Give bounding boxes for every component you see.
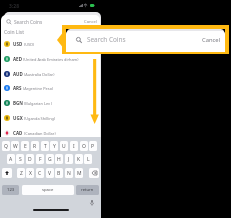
staticText: W <box>13 143 18 150</box>
staticText: USD <box>13 41 23 47</box>
button[interactable]: G <box>46 154 54 164</box>
button[interactable]: T <box>41 141 49 151</box>
staticText: O <box>82 143 86 150</box>
staticText: F <box>39 156 42 163</box>
staticText: G <box>48 156 52 163</box>
staticText: C <box>38 170 42 177</box>
staticText: H <box>57 156 61 163</box>
button[interactable]: F <box>36 154 44 164</box>
staticText: Y <box>53 143 56 150</box>
staticText: space <box>42 187 54 193</box>
button[interactable]: S <box>16 154 24 164</box>
button[interactable]: I <box>70 141 78 151</box>
staticText: (United Arab Emirates dirham) <box>23 57 79 62</box>
staticText: CAD <box>13 130 23 136</box>
staticText: R <box>33 143 37 150</box>
staticText: M <box>77 170 82 177</box>
button[interactable]: D <box>26 154 34 164</box>
staticText: T <box>44 143 47 150</box>
button[interactable]: A <box>7 154 15 164</box>
button[interactable]: E <box>21 141 29 151</box>
button[interactable]: B <box>55 168 63 178</box>
staticText: Z <box>20 170 23 177</box>
staticText: BGN <box>13 100 23 106</box>
button[interactable]: ARS <box>4 83 101 93</box>
staticText: Search Coins <box>14 19 43 25</box>
staticText: P <box>91 143 95 150</box>
button[interactable]: V <box>46 168 54 178</box>
button[interactable]: J <box>65 154 73 164</box>
staticText: N <box>67 170 71 177</box>
button[interactable]: CAD <box>4 128 101 138</box>
button[interactable]: U <box>60 141 68 151</box>
button[interactable]: N <box>65 168 73 178</box>
staticText: Q <box>4 143 8 150</box>
staticText: Cancel <box>84 19 98 25</box>
button[interactable]: AUD <box>4 69 101 79</box>
button[interactable]: K <box>75 154 83 164</box>
staticText: 3:28 <box>9 3 19 10</box>
staticText: A <box>9 156 13 163</box>
staticText: X <box>29 170 32 177</box>
button[interactable]: L <box>84 154 92 164</box>
staticText: U <box>62 143 66 150</box>
staticText: (Argentine Peso) <box>23 86 54 91</box>
staticText: V <box>48 170 52 177</box>
staticText: L <box>87 156 90 163</box>
staticText: J <box>68 156 70 163</box>
button[interactable]: space <box>22 185 74 195</box>
staticText: S <box>19 156 22 163</box>
button[interactable]: R <box>31 141 39 151</box>
button[interactable]: USD <box>4 39 101 49</box>
button[interactable]: X <box>26 168 34 178</box>
staticText: AED <box>13 56 22 62</box>
staticText: K <box>77 156 81 163</box>
staticText: ARS <box>13 85 22 91</box>
staticText: UGX <box>13 115 23 121</box>
staticText: (Canadian Dollar) <box>24 131 56 136</box>
staticText: 123 <box>7 187 15 193</box>
staticText: I <box>73 143 75 150</box>
staticText: return <box>81 187 94 193</box>
button[interactable]: O <box>80 141 88 151</box>
button[interactable]: BGN <box>4 98 101 108</box>
button[interactable]: M <box>75 168 83 178</box>
button[interactable]: AED <box>4 54 101 64</box>
button[interactable]: C <box>36 168 44 178</box>
button[interactable]: P <box>89 141 97 151</box>
staticText: Coin List <box>4 29 24 36</box>
staticText: (Uganda Shilling) <box>24 116 56 121</box>
staticText: (Bulgarian Lev ) <box>24 101 53 106</box>
button[interactable]: H <box>55 154 63 164</box>
staticText: (USD) <box>24 42 35 47</box>
staticText: B <box>57 170 61 177</box>
staticText: Cancel <box>202 36 221 44</box>
staticText: (Australia Dollar) <box>24 72 55 77</box>
button[interactable]: 123 <box>2 185 19 195</box>
button[interactable]: Search Coins <box>6 17 98 26</box>
staticText: D <box>28 156 32 163</box>
button[interactable]: Search Coins <box>66 29 225 50</box>
button[interactable]: Shift <box>2 168 12 178</box>
button[interactable]: Q <box>2 141 10 151</box>
staticText: AUD <box>13 71 23 77</box>
button[interactable]: Backspace <box>89 168 99 178</box>
staticText: E <box>24 143 27 150</box>
button[interactable]: W <box>11 141 19 151</box>
button[interactable]: Y <box>50 141 58 151</box>
button[interactable]: UGX <box>4 113 101 123</box>
button[interactable]: Z <box>17 168 25 178</box>
staticText: Search Coins <box>87 35 126 44</box>
button[interactable]: return <box>76 185 99 195</box>
